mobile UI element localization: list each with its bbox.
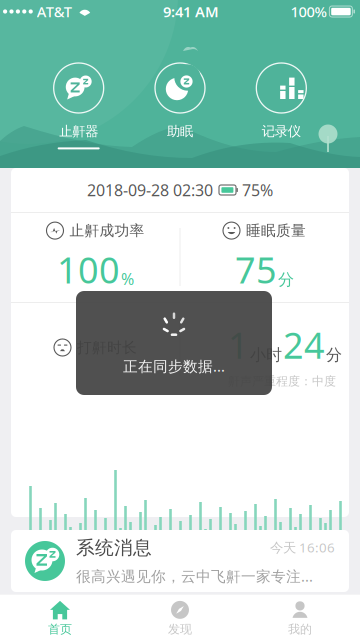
staticText: % xyxy=(121,268,134,289)
staticText: 正在同步数据... xyxy=(123,356,225,376)
staticText: AT&T xyxy=(37,2,72,21)
button[interactable]: 首页 xyxy=(0,595,120,642)
staticText: 分 xyxy=(326,345,342,365)
staticText: 1 xyxy=(228,321,249,369)
staticText: 很高兴遇见你，云中飞鼾一家专注... xyxy=(76,566,313,586)
staticText: 2018-09-28 02:30 xyxy=(87,179,213,201)
staticText: 打鼾时长 xyxy=(77,338,137,356)
staticText: 75% xyxy=(242,179,273,201)
button[interactable]: 我的 xyxy=(240,595,360,642)
staticText: 止鼾成功率 xyxy=(69,222,144,240)
staticText: 9:41 AM xyxy=(163,2,219,21)
button[interactable]: 助眠 xyxy=(155,63,205,149)
button[interactable]: 记录仪 xyxy=(256,63,306,149)
staticText: 止鼾器 xyxy=(59,123,98,139)
staticText: 记录仪 xyxy=(262,123,301,139)
staticText: 分 xyxy=(278,270,294,289)
staticText: 24 xyxy=(283,321,325,369)
button[interactable]: 止鼾器 xyxy=(54,63,104,149)
staticText: 100% xyxy=(290,2,326,21)
staticText: 睡眠质量 xyxy=(246,222,306,240)
staticText: 22:00 xyxy=(28,561,59,577)
staticText: 100 xyxy=(57,246,120,293)
staticText: 我的 xyxy=(288,622,312,637)
button[interactable]: 发现 xyxy=(120,595,240,642)
staticText: 小时 xyxy=(250,345,282,365)
button[interactable]: 系统消息 xyxy=(11,530,349,592)
staticText: 75 xyxy=(235,246,277,293)
staticText: 首页 xyxy=(48,622,72,637)
staticText: 发现 xyxy=(168,622,192,637)
staticText: 鼾声严重程度：中度 xyxy=(228,374,336,388)
staticText: 今天 16:06 xyxy=(270,538,335,556)
staticText: 系统消息 xyxy=(76,536,152,559)
staticText: 助眠 xyxy=(167,123,193,139)
